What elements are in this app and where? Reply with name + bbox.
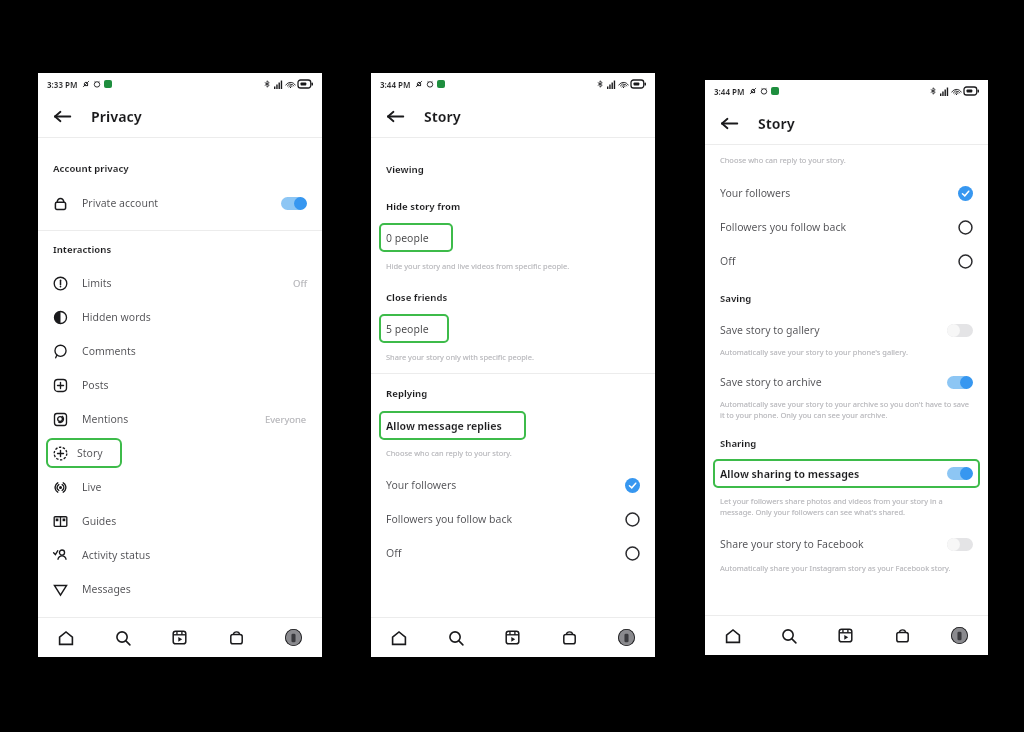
button[interactable]: Your followers <box>371 468 655 502</box>
button[interactable]: On <box>947 467 973 480</box>
button[interactable]: Followers you follow back <box>705 210 988 244</box>
staticText: Story <box>758 114 795 133</box>
button[interactable]: Private account <box>38 187 322 219</box>
button[interactable]: Back <box>49 103 75 129</box>
staticText: Allow message replies <box>386 419 502 433</box>
staticText: 0 people <box>386 231 429 245</box>
button[interactable]: Selected <box>625 478 640 493</box>
button[interactable]: Hidden words <box>38 300 322 334</box>
button[interactable]: Selected <box>958 186 973 201</box>
button[interactable]: Allow message replies <box>379 411 526 440</box>
button[interactable]: Activity status <box>38 538 322 572</box>
staticText: Your followers <box>386 478 457 492</box>
button[interactable]: Home <box>705 616 761 655</box>
staticText: Sharing <box>720 437 757 450</box>
button[interactable]: Followers you follow back <box>371 502 655 536</box>
staticText: Off <box>386 546 402 560</box>
staticText: Limits <box>82 276 112 290</box>
button[interactable]: Reels <box>484 618 541 657</box>
button[interactable]: Profile <box>598 618 655 657</box>
staticText: Automatically save your story to your ph… <box>720 347 908 357</box>
staticText: Privacy <box>91 107 142 126</box>
staticText: Viewing <box>386 163 424 176</box>
staticText: Allow sharing to messages <box>720 467 860 481</box>
staticText: Automatically share your Instagram story… <box>720 563 951 573</box>
button[interactable]: Profile <box>265 618 322 657</box>
button[interactable]: Off <box>947 538 973 551</box>
button[interactable]: Home <box>38 618 94 657</box>
button[interactable]: On <box>281 197 307 210</box>
staticText: Everyone <box>265 413 307 426</box>
staticText: 5 people <box>386 322 429 336</box>
staticText: Close friends <box>386 291 448 304</box>
staticText: Guides <box>82 514 117 528</box>
button[interactable]: Not selected <box>958 220 973 235</box>
button[interactable]: Share your story to Facebook <box>705 533 988 555</box>
staticText: Activity status <box>82 548 151 562</box>
button[interactable]: Shop <box>874 616 931 655</box>
button[interactable]: Save story to archive <box>705 371 988 393</box>
button[interactable]: Search <box>427 618 484 657</box>
staticText: Hidden words <box>82 310 151 324</box>
staticText: Save story to gallery <box>720 323 820 337</box>
staticText: Your followers <box>720 186 791 200</box>
staticText: Share your story to Facebook <box>720 537 864 551</box>
staticText: Messages <box>82 582 131 596</box>
button[interactable]: Off <box>705 244 988 278</box>
button[interactable]: Limits <box>38 266 322 300</box>
button[interactable]: Comments <box>38 334 322 368</box>
staticText: Mentions <box>82 412 129 426</box>
staticText: Live <box>82 480 102 494</box>
button[interactable]: On <box>947 376 973 389</box>
button[interactable]: Profile <box>931 616 988 655</box>
button[interactable]: Posts <box>38 368 322 402</box>
button[interactable]: Shop <box>541 618 598 657</box>
button[interactable]: Home <box>371 618 427 657</box>
staticText: Followers you follow back <box>720 220 847 234</box>
staticText: Story <box>77 446 103 460</box>
button[interactable]: Off <box>371 536 655 570</box>
button[interactable]: 5 people <box>379 314 449 343</box>
staticText: Off <box>720 254 736 268</box>
staticText: 3:44 PM <box>714 86 745 97</box>
staticText: Private account <box>82 196 159 210</box>
staticText: Followers you follow back <box>386 512 513 526</box>
button[interactable]: Not selected <box>958 254 973 269</box>
button[interactable]: Not selected <box>625 512 640 527</box>
button[interactable]: Your followers <box>705 176 988 210</box>
staticText: Off <box>293 277 307 290</box>
staticText: 3:44 PM <box>380 79 411 90</box>
button[interactable]: Allow sharing to messages <box>713 459 980 488</box>
staticText: Let your followers share photos and vide… <box>720 496 970 517</box>
button[interactable]: Search <box>94 618 151 657</box>
button[interactable]: Save story to gallery <box>705 319 988 341</box>
button[interactable]: Back <box>382 103 408 129</box>
button[interactable]: Story <box>46 438 122 468</box>
button[interactable]: Off <box>947 324 973 337</box>
staticText: 3:33 PM <box>47 79 78 90</box>
staticText: Hide story from <box>386 200 461 213</box>
button[interactable]: Reels <box>817 616 874 655</box>
button[interactable]: Shop <box>208 618 265 657</box>
button[interactable]: Not selected <box>625 546 640 561</box>
button[interactable]: Guides <box>38 504 322 538</box>
staticText: Save story to archive <box>720 375 822 389</box>
button[interactable]: Back <box>716 110 742 136</box>
staticText: Interactions <box>53 243 112 256</box>
button[interactable]: Messages <box>38 572 322 606</box>
button[interactable]: Search <box>761 616 817 655</box>
staticText: Replying <box>386 387 428 400</box>
staticText: Share your story only with specific peop… <box>386 352 535 362</box>
button[interactable]: Reels <box>151 618 208 657</box>
button[interactable]: Live <box>38 470 322 504</box>
staticText: Choose who can reply to your story. <box>720 155 846 165</box>
staticText: Saving <box>720 292 752 305</box>
staticText: Account privacy <box>53 162 129 175</box>
button[interactable]: 0 people <box>379 223 453 252</box>
staticText: Story <box>424 107 461 126</box>
staticText: Automatically save your story to your ar… <box>720 399 970 420</box>
staticText: Comments <box>82 344 136 358</box>
button[interactable]: Mentions <box>38 402 322 436</box>
staticText: Posts <box>82 378 109 392</box>
staticText: Hide your story and live videos from spe… <box>386 261 570 271</box>
